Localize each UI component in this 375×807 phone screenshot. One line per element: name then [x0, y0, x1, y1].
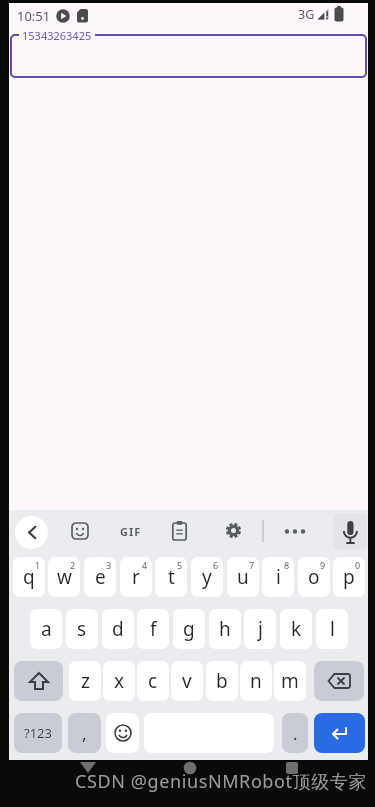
staticText: a: [41, 616, 52, 642]
button[interactable]: .: [282, 713, 308, 753]
staticText: 9: [320, 559, 326, 571]
staticText: 2: [70, 559, 76, 571]
button[interactable]: b: [206, 661, 238, 701]
staticText: k: [291, 616, 302, 642]
button[interactable]: m: [274, 661, 306, 701]
button[interactable]: c: [137, 661, 169, 701]
staticText: t: [168, 564, 175, 590]
button[interactable]: ?123: [14, 713, 62, 753]
button[interactable]: [15, 516, 48, 549]
button[interactable]: z: [69, 661, 101, 701]
staticText: c: [148, 668, 158, 694]
button[interactable]: u: [227, 557, 259, 597]
staticText: 15343263425: [22, 28, 92, 43]
button[interactable]: o: [298, 557, 330, 597]
button[interactable]: [71, 522, 89, 540]
staticText: v: [182, 668, 192, 694]
button[interactable]: r: [120, 557, 152, 597]
button[interactable]: [314, 713, 365, 753]
button[interactable]: d: [102, 609, 134, 649]
staticText: 1: [35, 559, 41, 571]
button[interactable]: h: [209, 609, 241, 649]
button[interactable]: y: [191, 557, 223, 597]
staticText: o: [308, 564, 320, 590]
staticText: GIF: [120, 524, 142, 539]
button[interactable]: [314, 661, 364, 701]
button[interactable]: w: [48, 557, 80, 597]
button[interactable]: [10, 34, 367, 78]
staticText: u: [237, 564, 249, 590]
staticText: f: [150, 616, 157, 642]
button[interactable]: e: [84, 557, 116, 597]
button[interactable]: [14, 661, 63, 701]
staticText: l: [330, 616, 335, 642]
button[interactable]: [106, 713, 139, 753]
staticText: 4: [142, 559, 148, 571]
button[interactable]: s: [66, 609, 98, 649]
button[interactable]: j: [244, 609, 276, 649]
button[interactable]: [172, 521, 187, 541]
button[interactable]: x: [103, 661, 135, 701]
staticText: CSDN @geniusNMRobot顶级专家: [75, 769, 368, 794]
button[interactable]: [284, 528, 306, 535]
button[interactable]: v: [171, 661, 203, 701]
button[interactable]: n: [240, 661, 272, 701]
button[interactable]: CSDN @geniusNMRobot顶级专家: [75, 769, 368, 794]
staticText: 6: [213, 559, 219, 571]
button[interactable]: i: [262, 557, 294, 597]
staticText: i: [276, 564, 281, 590]
button[interactable]: k: [280, 609, 312, 649]
staticText: ,: [82, 722, 87, 745]
staticText: 3: [106, 559, 112, 571]
staticText: h: [219, 616, 231, 642]
staticText: m: [281, 668, 299, 694]
button[interactable]: GIF: [120, 524, 142, 539]
staticText: 3G: [298, 6, 315, 23]
staticText: e: [95, 564, 106, 590]
staticText: d: [112, 616, 124, 642]
staticText: 0: [355, 559, 361, 571]
staticText: n: [250, 668, 262, 694]
staticText: p: [343, 564, 355, 590]
button[interactable]: q: [13, 557, 45, 597]
staticText: r: [132, 564, 140, 590]
button[interactable]: g: [173, 609, 205, 649]
staticText: .: [293, 722, 298, 745]
staticText: g: [183, 616, 195, 642]
staticText: w: [57, 564, 72, 590]
button[interactable]: p: [333, 557, 365, 597]
staticText: z: [81, 668, 90, 694]
staticText: j: [258, 616, 263, 642]
button[interactable]: [342, 518, 359, 548]
staticText: q: [23, 564, 35, 590]
button[interactable]: [225, 522, 242, 539]
staticText: b: [216, 668, 228, 694]
button[interactable]: a: [30, 609, 62, 649]
button[interactable]: t: [155, 557, 187, 597]
button[interactable]: l: [316, 609, 348, 649]
button[interactable]: ,: [68, 713, 101, 753]
staticText: 8: [284, 559, 290, 571]
staticText: 10:51: [17, 7, 51, 25]
staticText: x: [114, 668, 125, 694]
staticText: ?123: [24, 724, 52, 742]
staticText: 7: [249, 559, 255, 571]
staticText: y: [202, 564, 212, 590]
button[interactable]: f: [137, 609, 169, 649]
staticText: 5: [177, 559, 183, 571]
staticText: s: [77, 616, 87, 642]
